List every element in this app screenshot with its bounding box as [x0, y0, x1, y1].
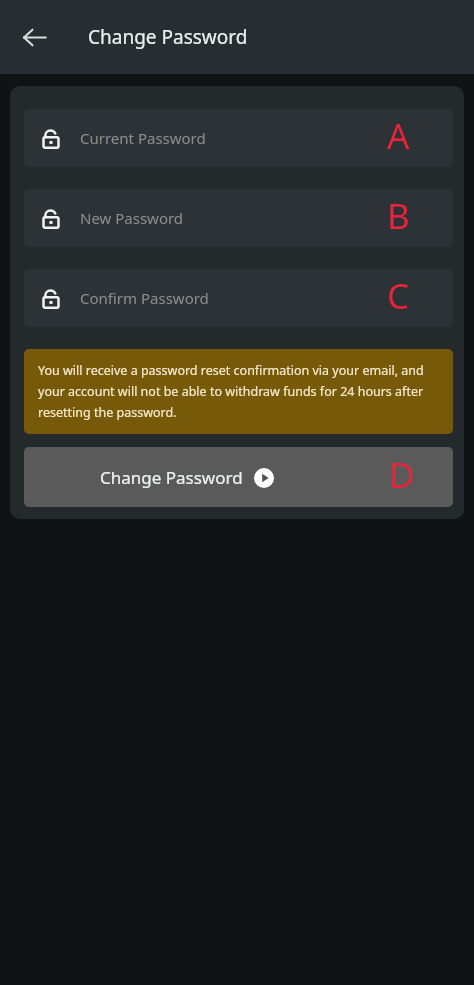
- button[interactable]: Change Password: [24, 447, 453, 507]
- staticText: You will receive a password reset confir…: [38, 362, 439, 421]
- button[interactable]: Current Password: [24, 109, 453, 167]
- button[interactable]: New Password: [24, 189, 453, 247]
- staticText: Confirm Password: [80, 288, 209, 308]
- staticText: Current Password: [80, 128, 206, 148]
- staticText: B: [387, 192, 410, 240]
- staticText: C: [387, 272, 410, 320]
- button[interactable]: Back: [11, 14, 57, 60]
- staticText: A: [387, 112, 410, 160]
- staticText: New Password: [80, 208, 184, 228]
- staticText: Change Password: [88, 24, 248, 50]
- button[interactable]: Confirm Password: [24, 269, 453, 327]
- staticText: Change Password: [100, 466, 243, 489]
- staticText: D: [389, 451, 415, 499]
